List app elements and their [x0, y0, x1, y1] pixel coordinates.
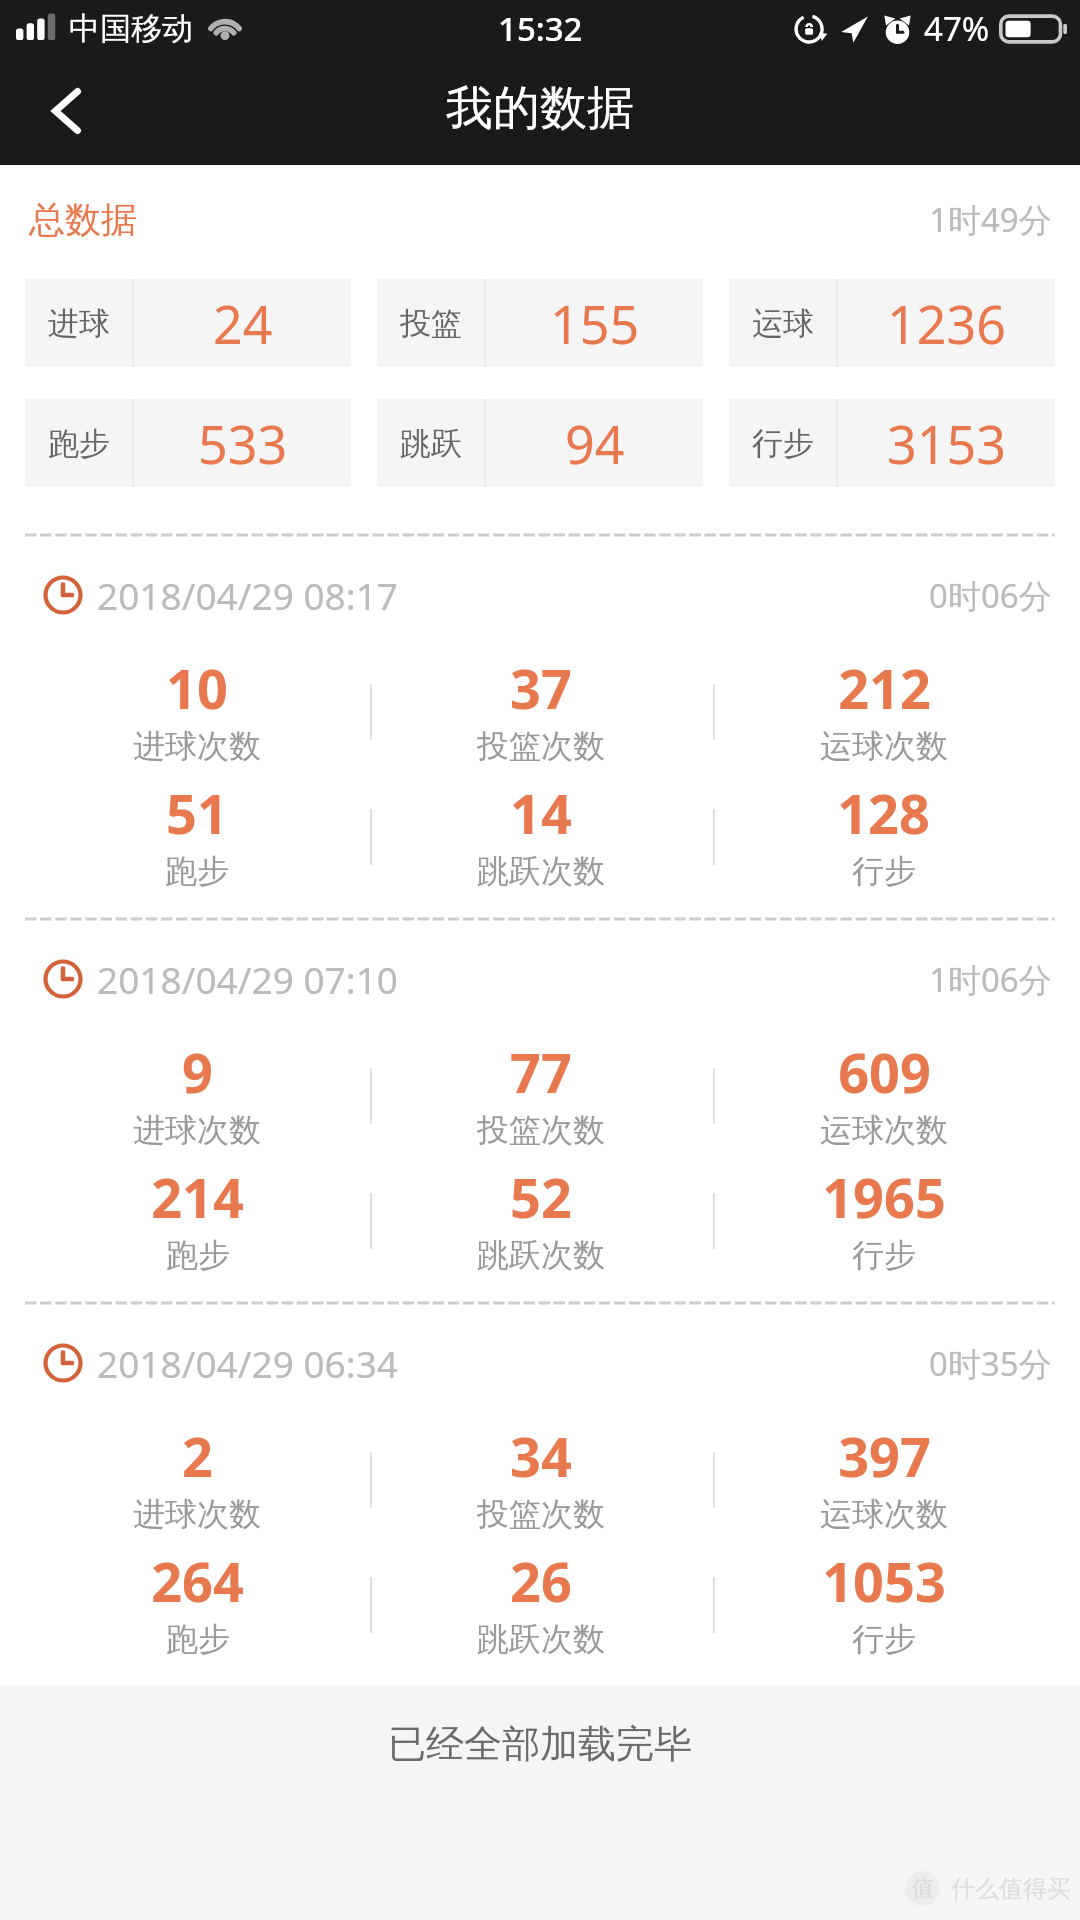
- staticText: 跳跃次数: [477, 851, 605, 891]
- staticText: 值: [911, 1874, 934, 1903]
- staticText: 跑步: [166, 1619, 230, 1659]
- staticText: 行步: [852, 1235, 916, 1275]
- staticText: 1时49分: [929, 197, 1052, 242]
- staticText: 2: [182, 1419, 213, 1493]
- staticText: 行步: [852, 851, 916, 891]
- staticText: 37: [510, 651, 572, 725]
- staticText: 214: [151, 1160, 244, 1234]
- staticText: 总数据: [29, 197, 137, 242]
- button[interactable]: 运球: [729, 279, 1055, 367]
- staticText: 26: [510, 1544, 572, 1618]
- button[interactable]: 2018/04/29 08:17: [0, 537, 1080, 917]
- staticText: 94: [565, 408, 625, 479]
- staticText: 3153: [887, 408, 1006, 479]
- staticText: 1965: [822, 1160, 946, 1234]
- staticText: 51: [166, 776, 228, 850]
- staticText: 9: [182, 1035, 213, 1109]
- staticText: 运球: [752, 304, 814, 343]
- staticText: 进球次数: [133, 1110, 261, 1150]
- staticText: 跑步: [48, 424, 110, 463]
- staticText: 2018/04/29 08:17: [97, 570, 399, 620]
- staticText: 2018/04/29 06:34: [97, 1338, 399, 1388]
- staticText: 投篮次数: [477, 1494, 605, 1534]
- staticText: 15:32: [498, 6, 583, 51]
- button[interactable]: 投篮: [377, 279, 703, 367]
- button[interactable]: 2018/04/29 07:10: [0, 921, 1080, 1301]
- button[interactable]: Back: [0, 56, 133, 165]
- staticText: 47%: [924, 6, 990, 51]
- staticText: 1053: [822, 1544, 946, 1618]
- staticText: 中国移动: [69, 9, 193, 48]
- staticText: 128: [837, 776, 930, 850]
- staticText: 0时35分: [929, 1341, 1052, 1386]
- staticText: 行步: [852, 1619, 916, 1659]
- staticText: 运球次数: [820, 726, 948, 766]
- staticText: 行步: [752, 424, 814, 463]
- staticText: 什么值得买: [951, 1874, 1071, 1904]
- staticText: 跳跃次数: [477, 1619, 605, 1659]
- staticText: 已经全部加载完毕: [388, 1720, 692, 1768]
- staticText: 14: [510, 776, 572, 850]
- staticText: 52: [510, 1160, 572, 1234]
- staticText: 我的数据: [446, 79, 634, 138]
- staticText: 进球次数: [133, 726, 261, 766]
- staticText: 投篮次数: [477, 1110, 605, 1150]
- staticText: 34: [510, 1419, 572, 1493]
- button[interactable]: 2018/04/29 06:34: [0, 1305, 1080, 1685]
- staticText: 投篮次数: [477, 726, 605, 766]
- staticText: 1时06分: [929, 957, 1052, 1002]
- staticText: 24: [213, 288, 273, 359]
- staticText: 533: [198, 408, 288, 479]
- button[interactable]: 跳跃: [377, 399, 703, 487]
- staticText: 进球: [48, 304, 110, 343]
- staticText: 投篮: [400, 304, 462, 343]
- staticText: 264: [151, 1544, 244, 1618]
- staticText: 2018/04/29 07:10: [97, 954, 399, 1004]
- staticText: 跑步: [165, 851, 229, 891]
- staticText: 155: [550, 288, 640, 359]
- staticText: 运球次数: [820, 1110, 948, 1150]
- staticText: 609: [838, 1035, 931, 1109]
- staticText: 跳跃: [400, 424, 462, 463]
- staticText: 运球次数: [820, 1494, 948, 1534]
- staticText: 跳跃次数: [477, 1235, 605, 1275]
- staticText: 0时06分: [929, 573, 1052, 618]
- staticText: 10: [166, 651, 228, 725]
- staticText: 跑步: [166, 1235, 230, 1275]
- button[interactable]: 进球: [25, 279, 351, 367]
- button[interactable]: 行步: [729, 399, 1055, 487]
- button[interactable]: 跑步: [25, 399, 351, 487]
- staticText: 397: [838, 1419, 931, 1493]
- staticText: 77: [510, 1035, 572, 1109]
- staticText: 进球次数: [133, 1494, 261, 1534]
- staticText: 212: [838, 651, 931, 725]
- staticText: 1236: [887, 288, 1006, 359]
